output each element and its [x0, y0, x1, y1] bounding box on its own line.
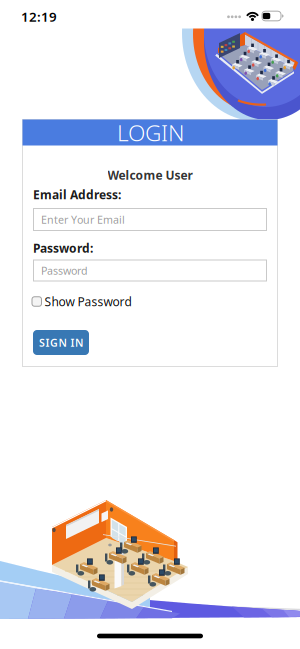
staticText: Enter Your Email: [41, 212, 125, 227]
staticText: SIGN IN: [39, 335, 83, 350]
staticText: Password: [41, 263, 88, 278]
staticText: Email Address:: [33, 186, 121, 202]
button[interactable]: Password: [33, 259, 267, 281]
staticText: LOGIN: [117, 117, 185, 147]
button[interactable]: Enter Your Email: [33, 208, 267, 231]
button[interactable]: Show Password: [32, 293, 268, 309]
button[interactable]: [97, 634, 203, 638]
staticText: 12:19: [21, 8, 57, 25]
staticText: Show Password: [44, 293, 131, 309]
staticText: Welcome User: [107, 167, 192, 183]
button[interactable]: SIGN IN: [33, 330, 89, 355]
staticText: Password:: [33, 240, 93, 256]
